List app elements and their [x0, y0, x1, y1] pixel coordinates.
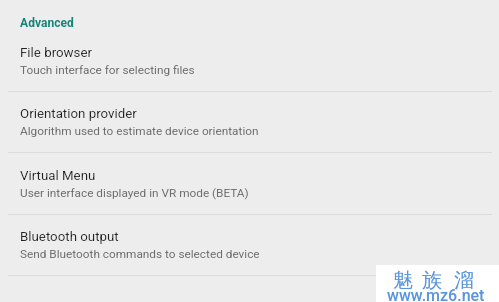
staticText: File browser: [20, 45, 93, 61]
button[interactable]: File browser: [0, 30, 499, 92]
staticText: Touch interface for selecting files: [20, 63, 195, 77]
staticText: User interface displayed in VR mode (BET…: [20, 186, 249, 200]
staticText: Orientation provider: [20, 106, 137, 122]
staticText: Algorithm used to estimate device orient…: [20, 124, 259, 138]
staticText: Send Bluetooth commands to selected devi…: [20, 247, 260, 261]
button[interactable]: Virtual Menu: [0, 153, 499, 215]
staticText: 魅: [393, 268, 413, 293]
staticText: Advanced: [20, 16, 74, 30]
button[interactable]: Bluetooth output: [0, 214, 499, 276]
staticText: 溜: [454, 268, 474, 293]
staticText: 族: [422, 268, 442, 293]
staticText: Virtual Menu: [20, 168, 96, 184]
button[interactable]: Orientation provider: [0, 91, 499, 153]
staticText: Bluetooth output: [20, 229, 119, 245]
staticText: www.mz6.net: [387, 286, 485, 302]
